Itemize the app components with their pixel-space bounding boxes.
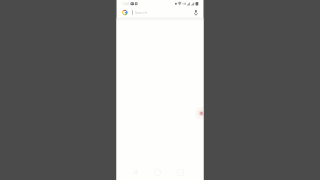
button[interactable]: Search [116,7,203,17]
staticText: Search [135,10,147,15]
staticText: 1:04 [122,1,129,6]
